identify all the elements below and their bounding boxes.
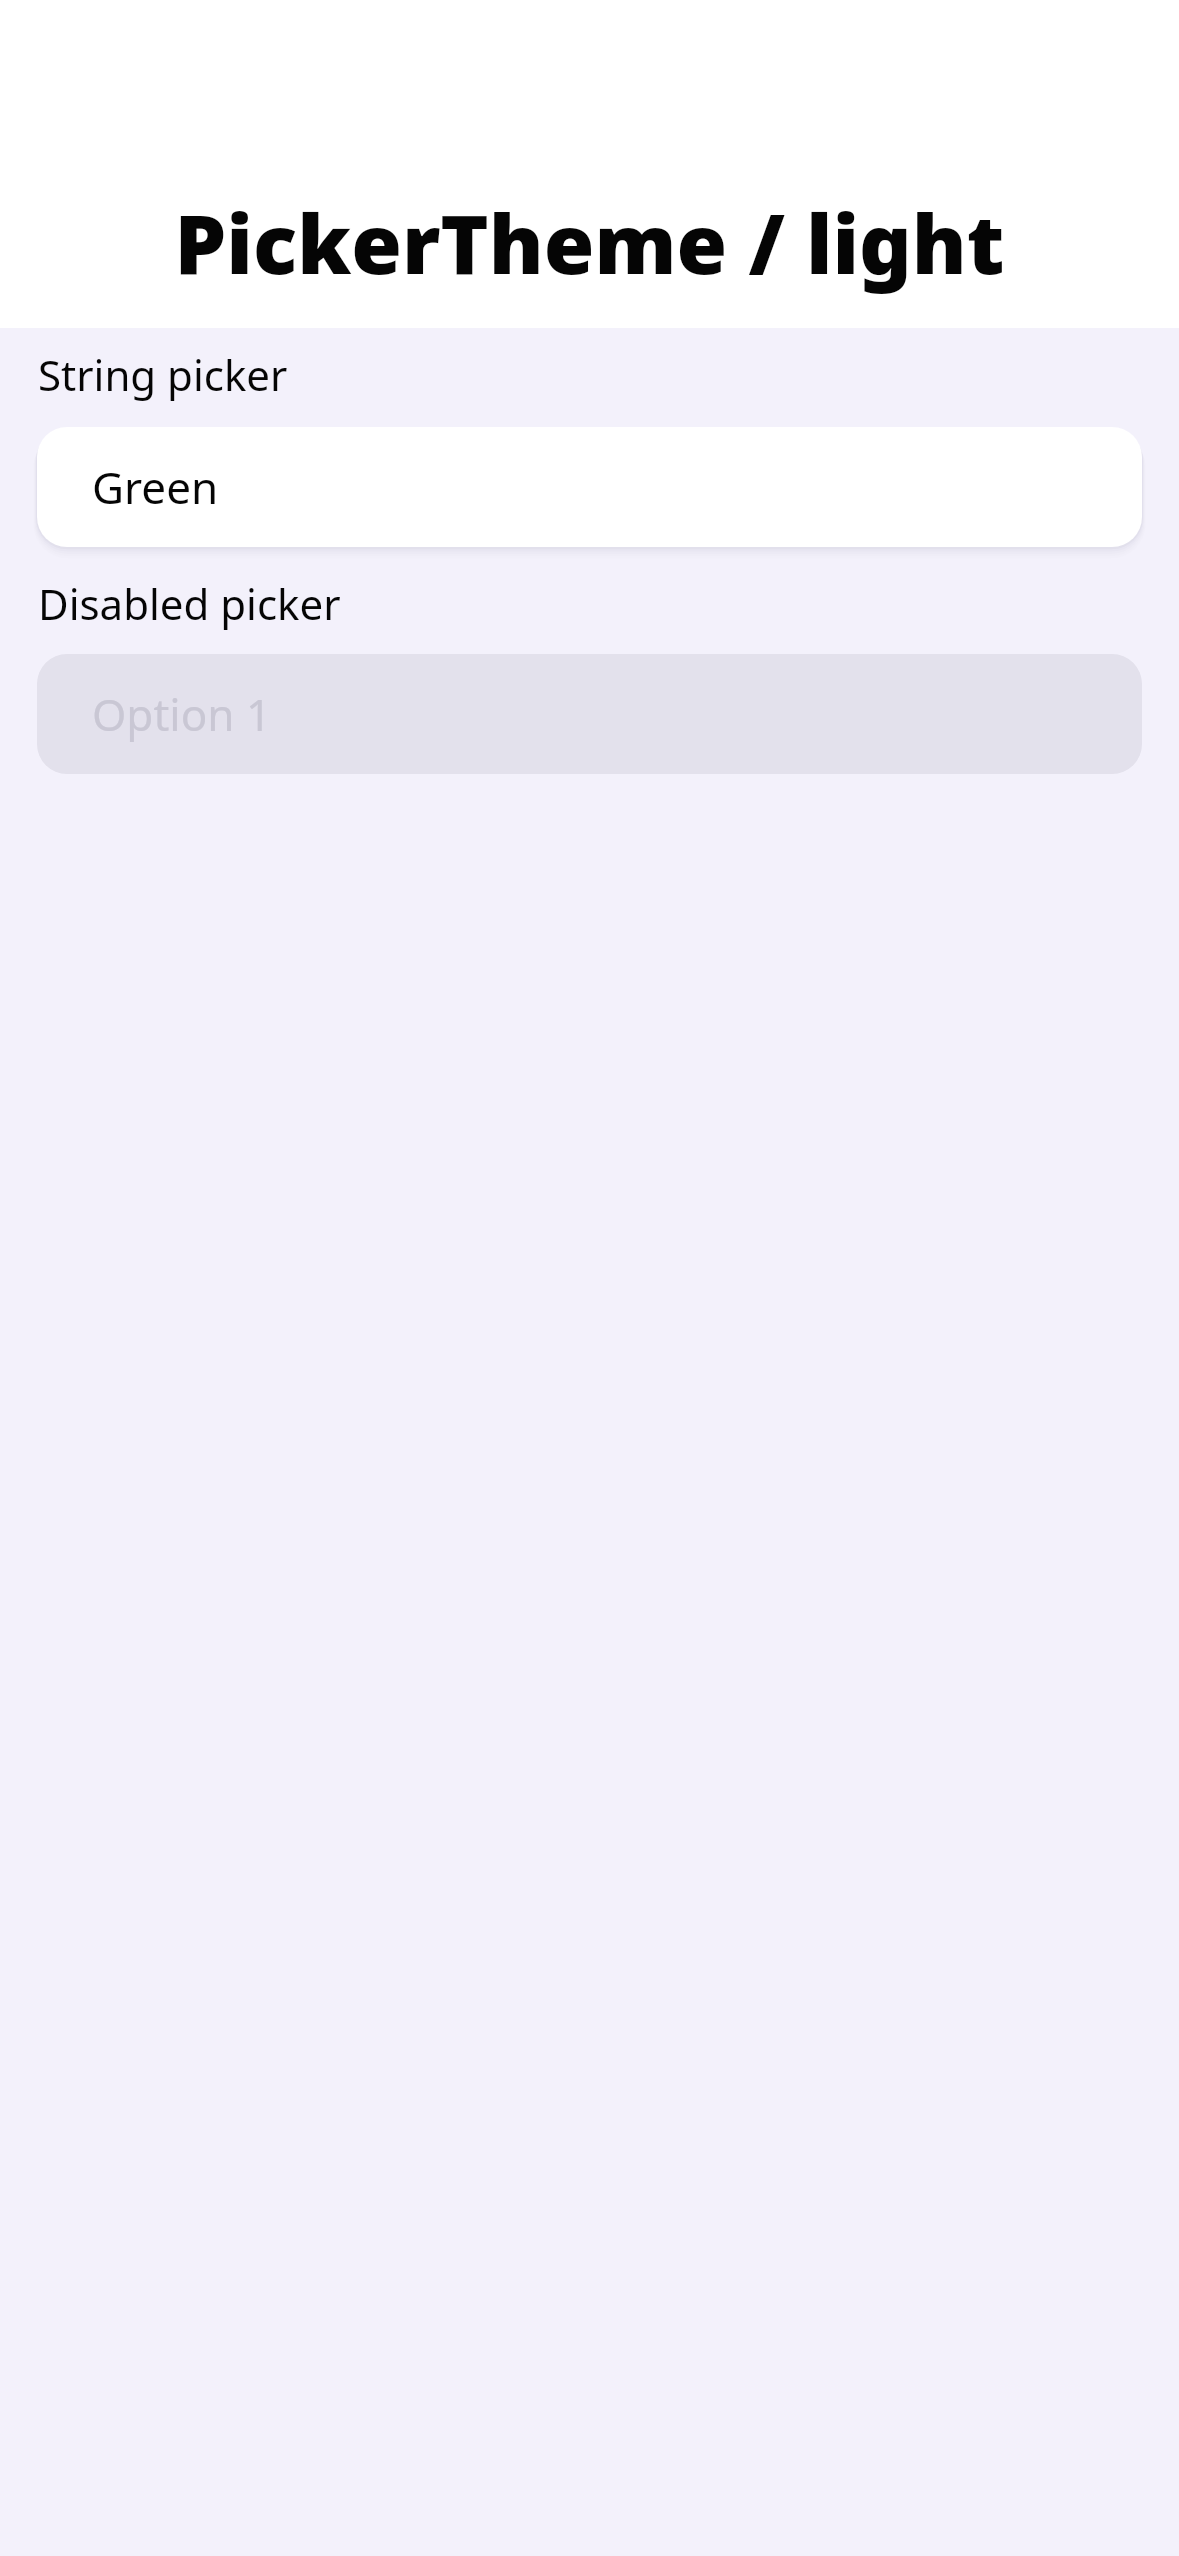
staticText: Option 1 [92,684,272,744]
staticText: PickerTheme / light [0,186,1179,298]
button[interactable]: Green [37,427,1142,547]
staticText: Green [92,457,219,517]
staticText: String picker [38,346,1179,403]
staticText: Disabled picker [38,575,1179,632]
